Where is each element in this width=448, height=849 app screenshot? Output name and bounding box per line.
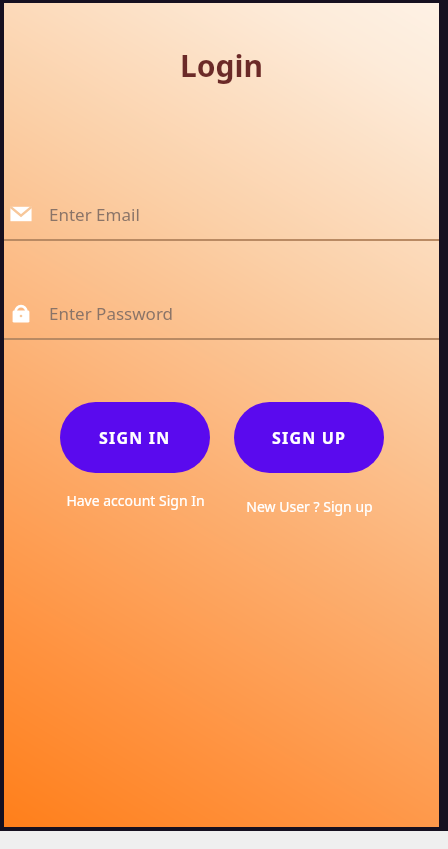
staticText: Have account Sign In [66, 491, 205, 510]
button[interactable]: Email [4, 198, 439, 241]
other: Password [9, 301, 33, 325]
button[interactable]: Password [4, 297, 439, 340]
button[interactable]: SIGN IN [60, 402, 210, 473]
staticText: Enter Password [49, 302, 174, 325]
button[interactable]: Have account Sign In [60, 491, 210, 510]
staticText: Login [4, 45, 439, 86]
other: Email [9, 202, 33, 226]
staticText: SIGN UP [272, 427, 347, 449]
staticText: New User ? Sign up [246, 497, 373, 516]
button[interactable]: New User ? Sign up [234, 497, 384, 516]
staticText: Enter Email [49, 203, 140, 226]
button[interactable]: SIGN UP [234, 402, 384, 473]
staticText: SIGN IN [99, 427, 171, 449]
